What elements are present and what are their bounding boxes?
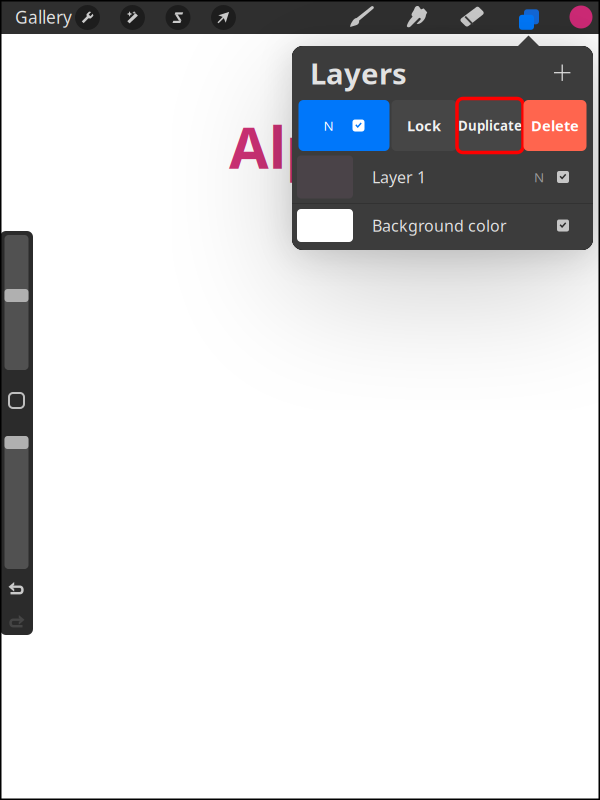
- button[interactable]: N: [298, 100, 389, 151]
- button[interactable]: Layers: [511, 1, 541, 32]
- staticText: Delete: [531, 116, 579, 135]
- staticText: Layer 1: [372, 166, 426, 188]
- button[interactable]: Undo: [1, 575, 31, 602]
- button[interactable]: Background color: [292, 204, 593, 247]
- staticText: N: [534, 168, 544, 186]
- staticText: N: [323, 117, 333, 134]
- button[interactable]: Actions: [75, 5, 100, 30]
- button[interactable]: Erase: [455, 1, 489, 32]
- button[interactable]: Modify: [2, 386, 31, 415]
- staticText: Lock: [407, 116, 441, 135]
- button[interactable]: Gallery: [4, 0, 83, 34]
- button[interactable]: Selection: [165, 5, 190, 30]
- button[interactable]: Lock: [391, 100, 456, 151]
- staticText: Background color: [372, 215, 507, 236]
- button[interactable]: Add layer: [546, 56, 579, 89]
- button[interactable]: Redo: [1, 608, 31, 635]
- staticText: Duplicate: [458, 117, 522, 134]
- staticText: Gallery: [15, 5, 72, 28]
- button[interactable]: Delete: [523, 100, 586, 151]
- button[interactable]: Colour: [564, 0, 597, 33]
- button[interactable]: Duplicate: [458, 100, 521, 151]
- button[interactable]: Layer 1: [292, 151, 593, 203]
- button[interactable]: Smudge: [401, 0, 433, 33]
- staticText: Layers: [310, 53, 407, 92]
- button[interactable]: Adjustments: [120, 5, 145, 30]
- button[interactable]: Paint: [345, 1, 379, 32]
- button[interactable]: Transform: [211, 5, 236, 30]
- staticText: Alp: [229, 108, 322, 185]
